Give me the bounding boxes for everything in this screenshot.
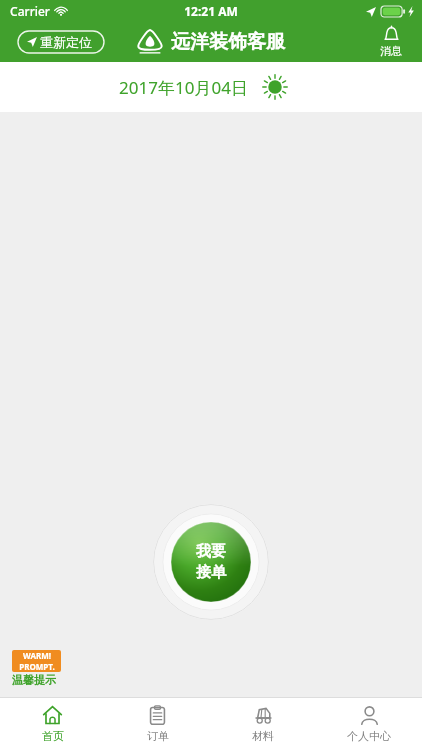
button[interactable]: WARM! — [10, 648, 63, 689]
staticText: 消息 — [380, 44, 402, 58]
button[interactable]: 材料 — [210, 698, 316, 750]
button[interactable]: 订单 — [105, 698, 210, 750]
staticText: 我要 — [196, 542, 226, 561]
staticText: 温馨提示 — [12, 673, 56, 687]
staticText: 订单 — [147, 729, 169, 743]
staticText: WARM! — [23, 650, 51, 661]
staticText: Carrier — [10, 3, 50, 19]
button[interactable]: 首页 — [0, 698, 105, 750]
staticText: 首页 — [42, 729, 64, 743]
staticText: 远洋装饰客服 — [171, 30, 285, 54]
staticText: 2017年10月04日 — [119, 76, 248, 99]
button[interactable]: 消息 — [376, 26, 406, 58]
staticText: 材料 — [252, 729, 274, 743]
button[interactable]: 重新定位 — [18, 31, 101, 53]
staticText: 接单 — [196, 563, 226, 582]
staticText: 重新定位 — [40, 34, 92, 50]
staticText: PROMPT. — [19, 661, 55, 672]
staticText: 12:21 AM — [184, 3, 238, 19]
button[interactable]: 我要 — [153, 504, 269, 620]
button[interactable]: 个人中心 — [316, 698, 422, 750]
staticText: 个人中心 — [347, 729, 391, 743]
